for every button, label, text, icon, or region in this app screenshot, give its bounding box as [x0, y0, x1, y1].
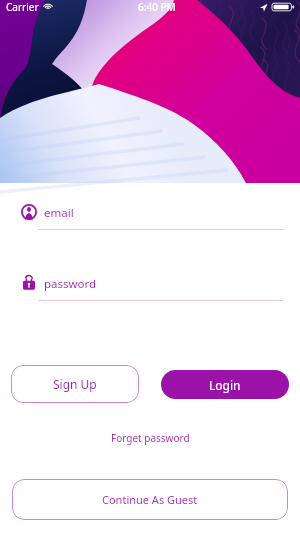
button[interactable]: Sign Up	[11, 365, 139, 403]
staticText: password	[44, 276, 97, 292]
button[interactable]: Forget password	[105, 428, 196, 448]
staticText: Sign Up	[53, 376, 97, 392]
staticText: Forget password	[111, 431, 190, 445]
staticText: Login	[209, 377, 241, 393]
staticText: Continue As Guest	[102, 492, 198, 507]
staticText: Carrier	[6, 0, 39, 14]
button[interactable]: Login	[161, 370, 289, 399]
staticText: email	[44, 205, 74, 221]
staticText: 6:40 PM	[138, 0, 176, 14]
button[interactable]: Continue As Guest	[12, 479, 288, 520]
